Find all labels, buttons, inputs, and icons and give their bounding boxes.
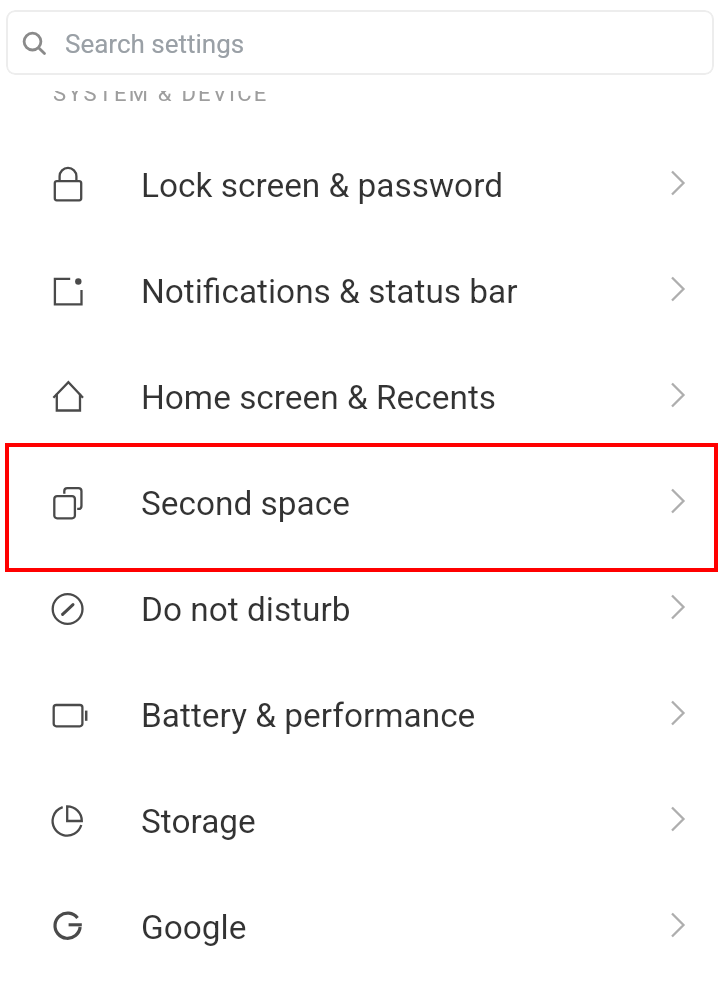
other: Open (661, 484, 695, 518)
button[interactable]: Do not disturb (0, 556, 720, 662)
staticText: Google (141, 908, 247, 947)
button[interactable]: Google (0, 874, 720, 980)
other: Second space (46, 481, 90, 525)
staticText: Do not disturb (141, 590, 351, 629)
button[interactable]: Second space (0, 450, 720, 556)
button[interactable]: Lock screen and password (0, 132, 720, 238)
button[interactable]: Battery and performance (0, 662, 720, 768)
other: Open (661, 166, 695, 200)
staticText: Second space (141, 484, 350, 523)
other: Notifications and status bar (46, 269, 90, 313)
other: Google (46, 905, 90, 949)
other: Home screen and Recents (46, 375, 90, 419)
button[interactable]: Storage (0, 768, 720, 874)
other: Do not disturb (46, 587, 90, 631)
other: Open (661, 378, 695, 412)
button[interactable]: Search (6, 10, 714, 75)
button[interactable]: Notifications and status bar (0, 238, 720, 344)
staticText: SYSTEM & DEVICE (53, 91, 269, 107)
other: Open (661, 696, 695, 730)
staticText: Battery & performance (141, 696, 476, 735)
other: Battery and performance (46, 693, 90, 737)
other: Open (661, 908, 695, 942)
staticText: Lock screen & password (141, 166, 503, 205)
other: Search (10, 21, 54, 65)
other: Storage (46, 799, 90, 843)
other: Lock screen and password (46, 163, 90, 207)
other: Open (661, 802, 695, 836)
staticText: Notifications & status bar (141, 272, 518, 311)
button[interactable]: Home screen and Recents (0, 344, 720, 450)
other: Open (661, 590, 695, 624)
staticText: Home screen & Recents (141, 378, 497, 417)
staticText: Search settings (65, 29, 245, 59)
other: Open (661, 272, 695, 306)
staticText: Storage (141, 802, 256, 841)
